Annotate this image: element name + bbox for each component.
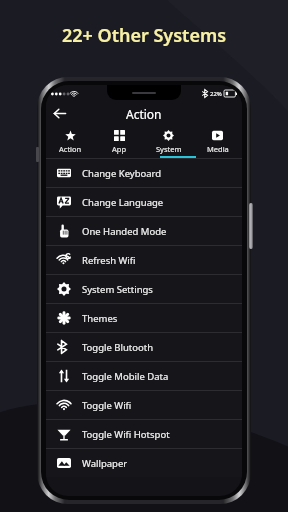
button[interactable]: Refresh Wifi <box>46 246 242 274</box>
staticText: Toggle Wifi Hotspot <box>82 428 170 441</box>
button[interactable]: Media <box>193 125 242 158</box>
staticText: Action <box>59 144 82 154</box>
button[interactable]: App <box>95 125 144 158</box>
button[interactable]: Wallpaper <box>46 449 242 477</box>
button[interactable]: Change Keyboard <box>46 159 242 187</box>
button[interactable]: Back <box>49 103 70 124</box>
button[interactable]: Toggle Mobile Data <box>46 362 242 390</box>
staticText: One Handed Mode <box>82 225 167 238</box>
staticText: App <box>112 144 127 154</box>
staticText: Toggle Mobile Data <box>82 370 169 383</box>
staticText: Toggle Blutooth <box>82 341 154 354</box>
staticText: Wallpaper <box>82 457 128 470</box>
button[interactable]: Action <box>46 125 95 158</box>
button[interactable]: Themes <box>46 304 242 332</box>
staticText: Action <box>126 106 162 122</box>
staticText: Toggle Wifi <box>82 399 132 412</box>
staticText: Refresh Wifi <box>82 254 136 267</box>
staticText: System Settings <box>82 283 153 296</box>
staticText: 22% <box>210 90 222 98</box>
staticText: Media <box>207 144 229 154</box>
button[interactable]: One Handed Mode <box>46 217 242 245</box>
button[interactable]: Toggle Wifi Hotspot <box>46 420 242 448</box>
button[interactable]: System Settings <box>46 275 242 303</box>
staticText: System <box>156 144 182 154</box>
staticText: Change Language <box>82 196 164 209</box>
button[interactable]: Toggle Wifi <box>46 391 242 419</box>
button[interactable]: Toggle Blutooth <box>46 333 242 361</box>
staticText: Change Keyboard <box>82 167 162 180</box>
staticText: 22+ Other Systems <box>0 23 288 48</box>
staticText: Themes <box>82 312 118 325</box>
button[interactable]: System <box>144 125 193 158</box>
button[interactable]: Change Language <box>46 188 242 216</box>
